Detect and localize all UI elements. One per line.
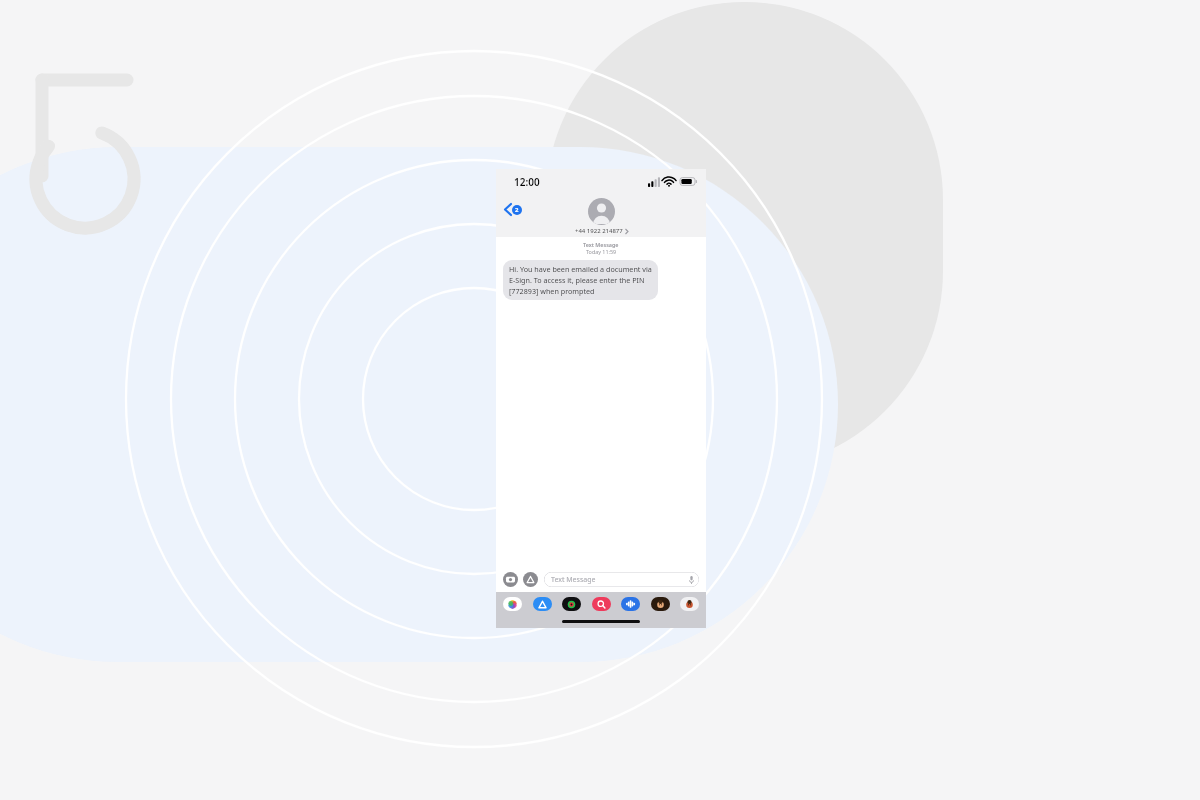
button[interactable]: Music bbox=[561, 596, 582, 612]
staticText: 12:00 bbox=[514, 175, 540, 189]
button[interactable]: Audio message bbox=[620, 596, 641, 612]
staticText: Today 11:59 bbox=[586, 248, 617, 255]
button[interactable]: App Store bbox=[532, 596, 553, 612]
button[interactable]: Text Message field bbox=[544, 572, 699, 587]
staticText: 2 bbox=[515, 206, 519, 214]
button[interactable]: Photos bbox=[502, 596, 523, 612]
button[interactable]: Image search bbox=[591, 596, 612, 612]
staticText: Text Message bbox=[583, 241, 619, 248]
button[interactable]: Back, 2 unread bbox=[501, 200, 525, 219]
button[interactable]: Apps bbox=[523, 572, 538, 587]
staticText: +44 1922 214877 bbox=[575, 227, 623, 235]
button[interactable]: Hi. You have been emailed a document via… bbox=[503, 260, 658, 300]
button[interactable]: Camera bbox=[503, 572, 518, 587]
staticText: Hi. You have been emailed a document via… bbox=[509, 264, 652, 296]
button[interactable]: Memoji bbox=[650, 596, 671, 612]
button[interactable]: Sticker bbox=[679, 596, 700, 612]
staticText: Text Message bbox=[551, 575, 596, 585]
